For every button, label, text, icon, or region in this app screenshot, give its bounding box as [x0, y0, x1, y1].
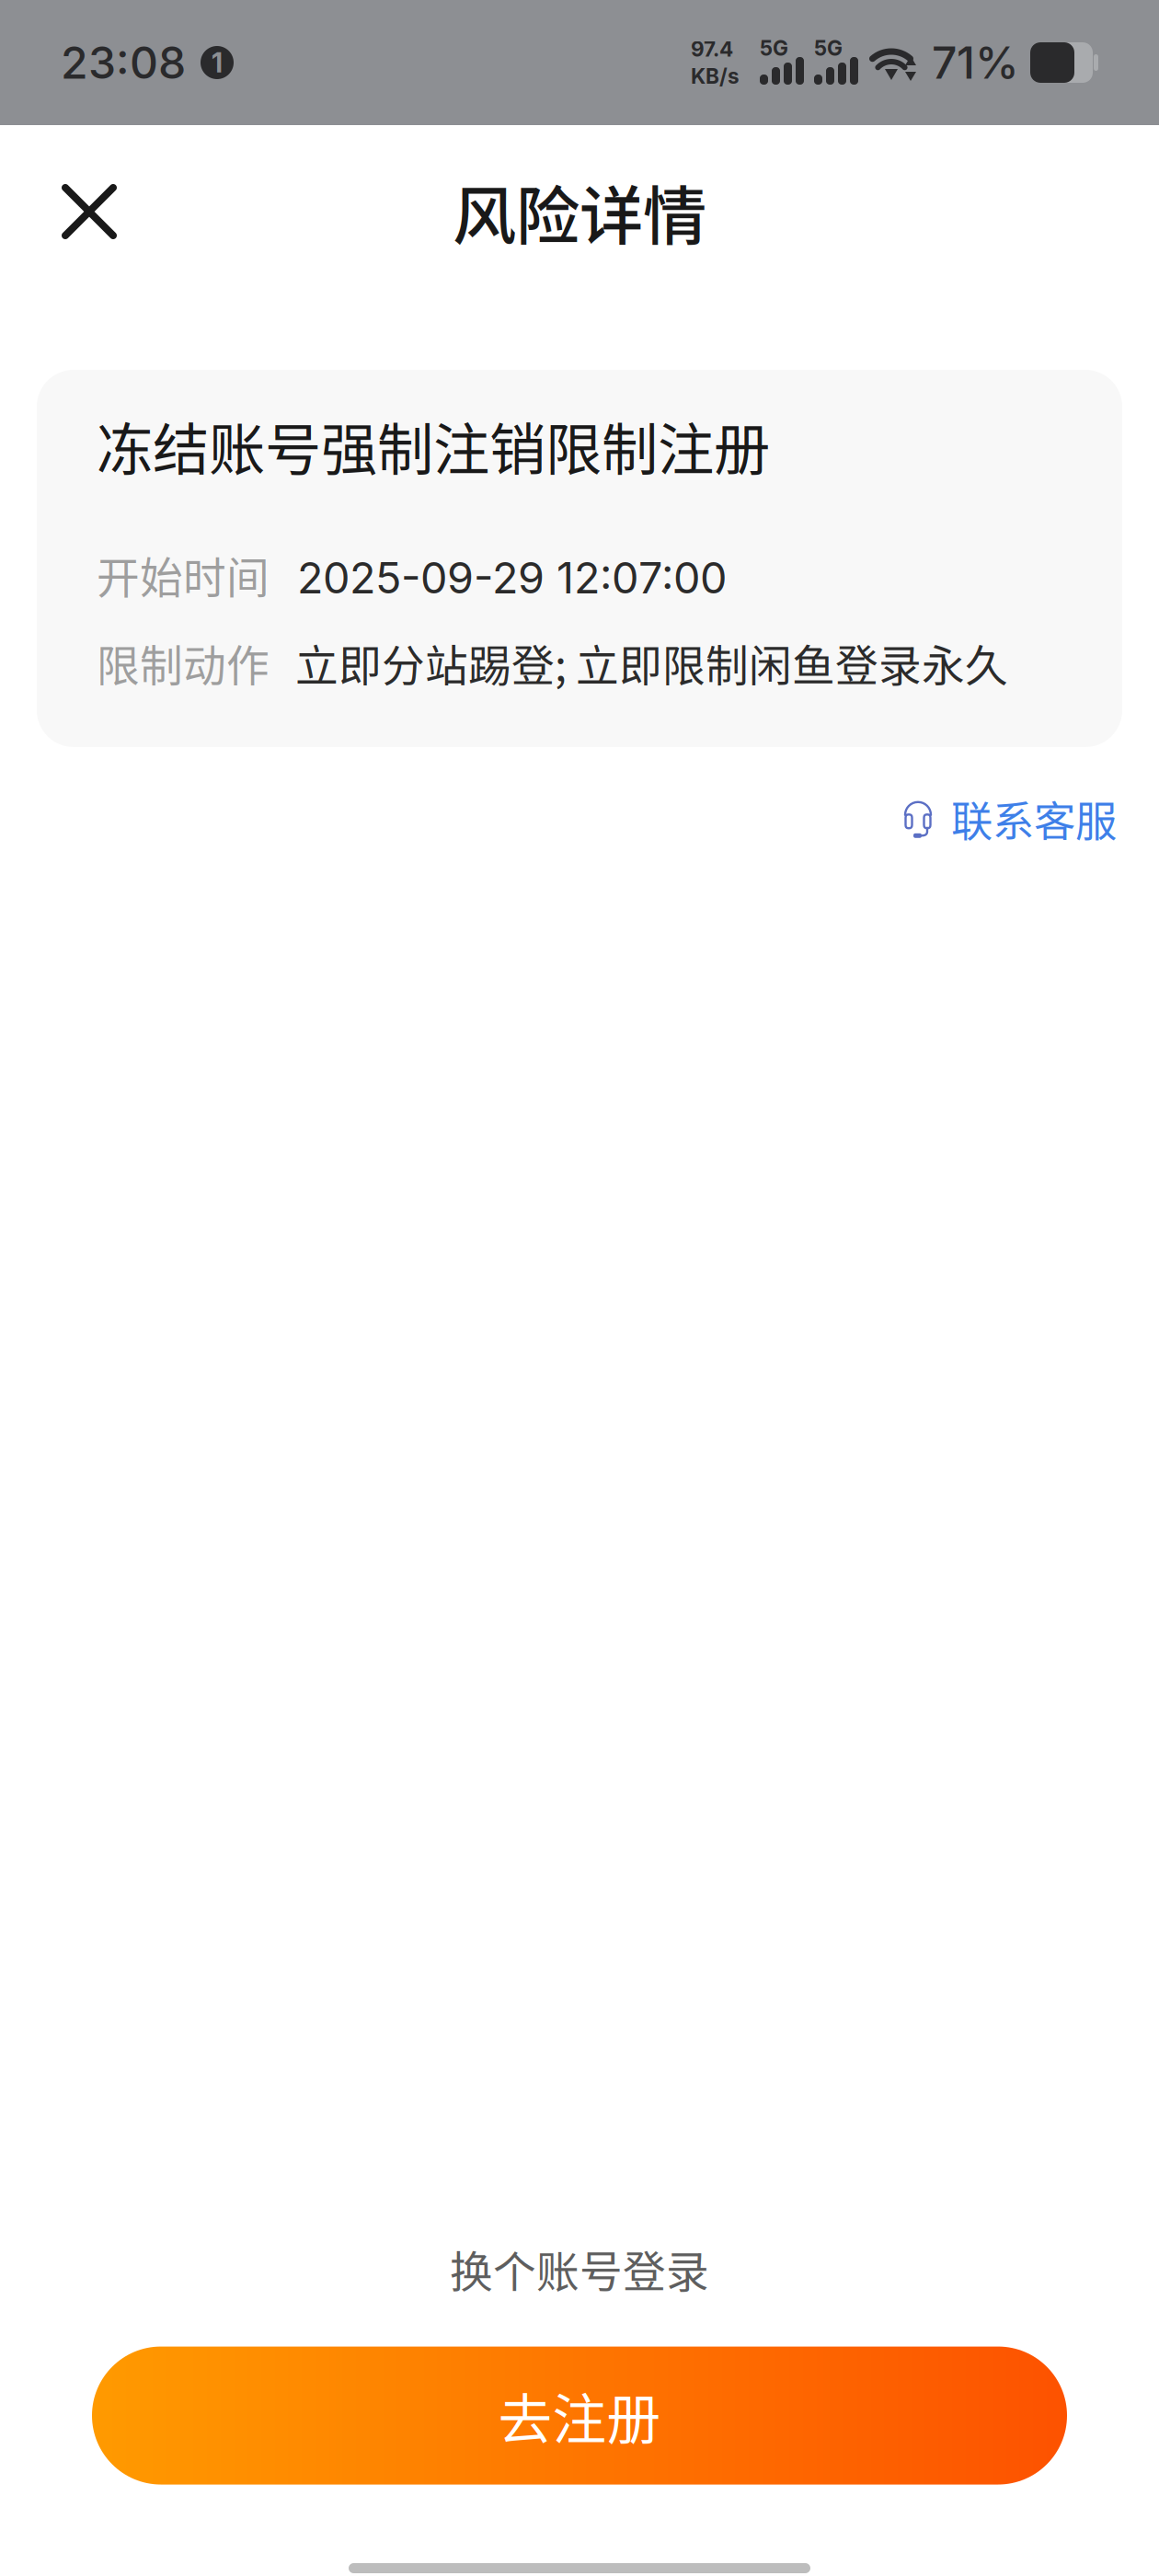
staticText: 2025-09-29 12:07:00 — [297, 552, 727, 604]
staticText: 23:08 — [61, 36, 186, 89]
staticText: 去注册 — [498, 2376, 661, 2455]
staticText: 联系客服 — [951, 788, 1117, 849]
button[interactable]: 去注册 — [92, 2347, 1067, 2485]
staticText: 冻结账号强制注销限制注册 — [97, 405, 770, 486]
staticText: 风险详情 — [453, 165, 706, 258]
staticText: 限制动作 — [97, 631, 270, 694]
staticText: 立即分站踢登; 立即限制闲鱼登录永久 — [295, 631, 1008, 694]
button[interactable]: 关闭 — [29, 151, 149, 272]
staticText: 换个账号登录 — [450, 2237, 709, 2300]
staticText: 1 — [212, 46, 223, 79]
staticText: 开始时间 — [97, 544, 270, 606]
staticText: 71% — [932, 36, 1019, 89]
button[interactable]: 联系客服 — [901, 777, 1117, 860]
staticText: 5G — [760, 36, 788, 61]
button[interactable]: 换个账号登录 — [450, 2230, 709, 2307]
staticText: 5G — [814, 36, 843, 61]
staticText: 97.4 — [691, 36, 733, 62]
staticText: KB/s — [691, 63, 740, 89]
